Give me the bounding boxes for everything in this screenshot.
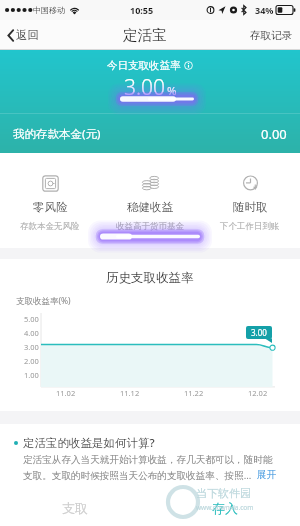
- staticText: 2.00: [24, 356, 39, 366]
- button[interactable]: 稳健收益: [100, 153, 200, 248]
- staticText: 0.00: [261, 125, 287, 143]
- button[interactable]: 支取: [0, 490, 150, 526]
- button[interactable]: 存取记录: [242, 20, 300, 50]
- staticText: 稳健收益: [127, 200, 173, 214]
- staticText: 随时取: [233, 200, 268, 214]
- staticText: 历史支取收益率: [106, 270, 194, 286]
- staticText: 3.00: [24, 342, 39, 352]
- staticText: 我的存款本金(元): [13, 126, 101, 142]
- staticText: 34%: [255, 4, 274, 16]
- staticText: 定活宝: [123, 26, 167, 44]
- staticText: 收益高于货币基金: [116, 221, 184, 232]
- staticText: 定活宝从存入当天就开始计算收益，存几天都可以，随时能支取。支取的时候按照当天公布…: [23, 454, 279, 482]
- staticText: 11.12: [120, 388, 140, 398]
- staticText: 支取: [62, 500, 88, 516]
- staticText: 存取记录: [250, 29, 292, 42]
- button[interactable]: 存入: [150, 490, 300, 526]
- staticText: 定活宝的收益是如何计算?: [23, 435, 155, 451]
- staticText: www.downxia.com: [196, 503, 254, 512]
- button[interactable]: 随时取: [200, 153, 300, 248]
- staticText: 今日支取收益率: [107, 59, 181, 72]
- staticText: %: [167, 83, 177, 99]
- staticText: 下个工作日到账: [220, 221, 280, 232]
- staticText: 12.02: [248, 388, 268, 398]
- button[interactable]: 返回: [0, 20, 49, 50]
- button[interactable]: 零风险: [0, 153, 100, 248]
- staticText: 中国移动: [33, 5, 65, 15]
- staticText: 展开: [257, 469, 277, 481]
- staticText: 3.00: [251, 327, 267, 338]
- staticText: 4.00: [24, 328, 39, 338]
- staticText: 当下软件园: [196, 486, 251, 500]
- staticText: 存入: [212, 500, 238, 516]
- staticText: 5.00: [24, 314, 39, 324]
- staticText: 存款本金无风险: [20, 221, 80, 232]
- staticText: 3.00: [124, 73, 166, 102]
- staticText: 支取收益率(%): [16, 295, 71, 307]
- staticText: 零风险: [33, 200, 68, 214]
- staticText: 返回: [16, 28, 39, 42]
- staticText: 11.22: [184, 388, 204, 398]
- staticText: 11.02: [56, 388, 76, 398]
- staticText: 10:55: [130, 4, 154, 16]
- staticText: 1.00: [24, 370, 39, 380]
